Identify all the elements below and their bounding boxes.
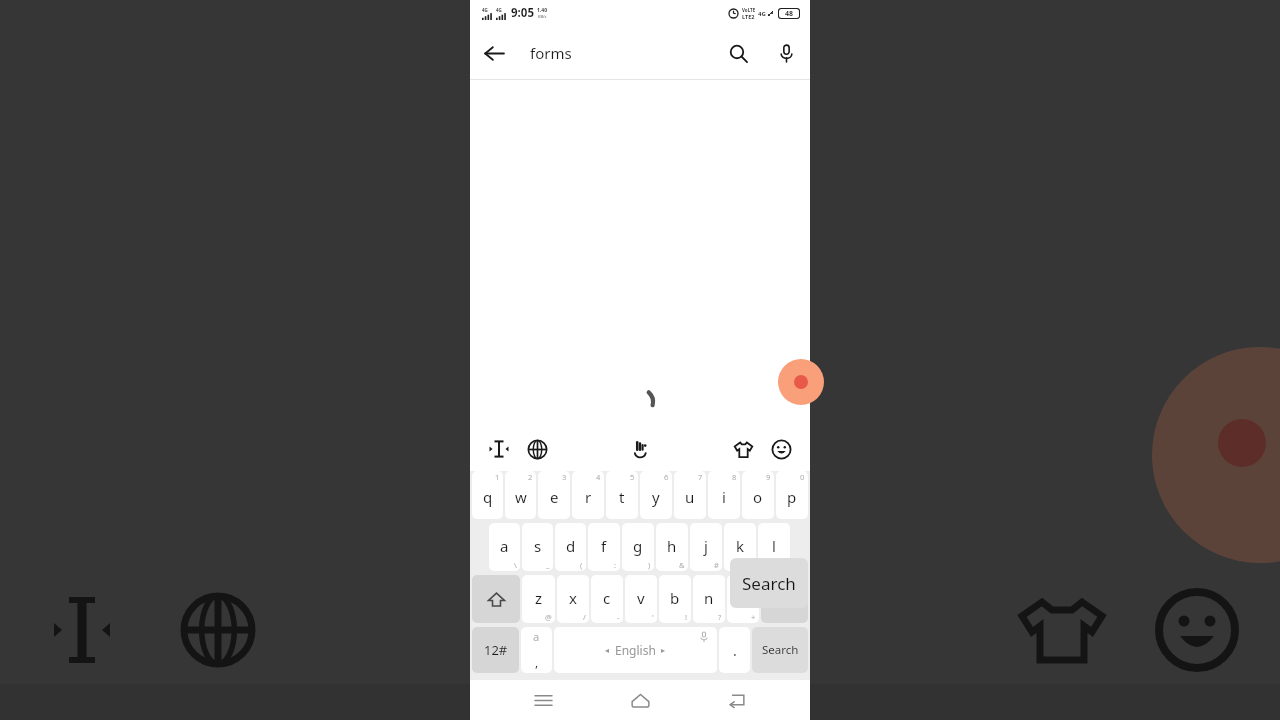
staticText: s (534, 536, 542, 556)
staticText: 12# (484, 641, 508, 659)
staticText: Search (762, 642, 799, 658)
staticText: ! (685, 612, 688, 622)
button[interactable]: k (724, 523, 756, 571)
staticText: 4G (758, 10, 766, 18)
staticText: . (733, 641, 737, 660)
button[interactable]: Voice search (762, 29, 810, 77)
button[interactable]: b (659, 575, 691, 623)
staticText: KB/s (538, 14, 547, 19)
staticText: 48 (785, 9, 794, 18)
button[interactable]: Change language (520, 432, 554, 466)
button[interactable]: Search (752, 627, 808, 673)
button[interactable]: g (622, 523, 654, 571)
button[interactable]: Home (616, 680, 664, 720)
button[interactable]: Shift (472, 575, 520, 623)
button[interactable]: Space, English (554, 627, 717, 673)
staticText: forms (530, 43, 572, 63)
staticText: f (601, 536, 607, 556)
staticText: ? (718, 612, 722, 622)
button[interactable]: t (606, 471, 638, 519)
staticText: h (667, 536, 677, 556)
staticText: l (772, 536, 776, 556)
staticText: b (670, 588, 680, 608)
staticText: @ (545, 612, 552, 622)
button[interactable]: l (758, 523, 790, 571)
staticText: Search (742, 572, 796, 595)
button[interactable]: h (656, 523, 688, 571)
button[interactable]: u (674, 471, 706, 519)
button[interactable]: w (505, 471, 536, 519)
staticText: k (736, 536, 745, 556)
staticText: _ (546, 560, 550, 570)
staticText: 5 (630, 472, 635, 482)
button[interactable]: i (708, 471, 740, 519)
staticText: 0 (800, 472, 805, 482)
staticText: VoLTE (742, 7, 756, 13)
button[interactable]: Recent apps (519, 680, 567, 720)
button[interactable]: Back (470, 29, 518, 77)
button[interactable]: . (719, 627, 750, 673)
button[interactable]: r (572, 471, 604, 519)
button[interactable]: a (489, 523, 520, 571)
button[interactable]: e (538, 471, 570, 519)
staticText: ◂ (605, 646, 610, 655)
staticText: q (483, 487, 493, 507)
button[interactable]: o (742, 471, 774, 519)
staticText: d (566, 536, 576, 556)
staticText: 4 (596, 472, 601, 482)
staticText: 3 (562, 472, 567, 482)
button[interactable]: y (640, 471, 672, 519)
staticText: z (535, 588, 543, 608)
button[interactable]: p (776, 471, 808, 519)
button[interactable]: z (522, 575, 555, 623)
staticText: v (637, 588, 645, 608)
staticText: p (787, 487, 797, 507)
staticText: 6 (664, 472, 669, 482)
staticText: 4G (496, 7, 502, 13)
button[interactable]: n (693, 575, 725, 623)
staticText: - (617, 612, 620, 622)
staticText: 1 (495, 472, 500, 482)
staticText: English (615, 642, 656, 658)
staticText: 9 (766, 472, 771, 482)
button[interactable]: j (690, 523, 722, 571)
button[interactable]: f (588, 523, 620, 571)
button[interactable]: x (557, 575, 589, 623)
button[interactable]: forms (530, 26, 714, 79)
button[interactable]: s (522, 523, 553, 571)
staticText: j (704, 536, 708, 556)
button[interactable]: m (727, 575, 759, 623)
button[interactable]: a (521, 627, 552, 673)
button[interactable]: Search (730, 558, 808, 608)
staticText: g (633, 536, 643, 556)
button[interactable]: Move cursor (482, 432, 516, 466)
staticText: y (652, 487, 660, 507)
staticText: e (550, 487, 559, 507)
staticText: r (585, 487, 592, 507)
staticText: o (753, 487, 763, 507)
button[interactable]: v (625, 575, 657, 623)
button[interactable]: Backspace (761, 575, 808, 623)
staticText: / (583, 612, 586, 622)
button[interactable]: 12# (472, 627, 519, 673)
staticText: x (569, 588, 577, 608)
button[interactable]: Search (714, 29, 762, 77)
staticText: u (685, 487, 695, 507)
staticText: a (533, 629, 540, 644)
staticText: LTE2 (742, 13, 755, 20)
staticText: c (603, 588, 611, 608)
staticText: 1.40 (537, 7, 547, 14)
button[interactable]: Compose (778, 359, 824, 405)
button[interactable]: c (591, 575, 623, 623)
staticText: 4G (482, 7, 488, 13)
button[interactable]: d (555, 523, 586, 571)
button[interactable]: Emoji (764, 432, 798, 466)
staticText: ) (648, 560, 651, 570)
button[interactable]: Back (713, 680, 761, 720)
button[interactable]: Theme (726, 432, 760, 466)
button[interactable]: Handwriting (623, 432, 657, 466)
button[interactable]: q (472, 471, 503, 519)
staticText: t (619, 487, 625, 507)
staticText: 2 (528, 472, 533, 482)
